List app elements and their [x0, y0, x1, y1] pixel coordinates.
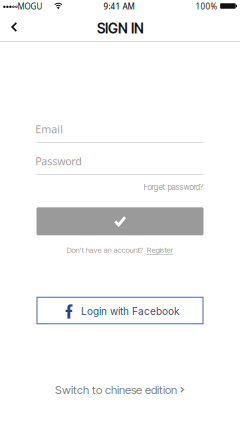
button[interactable]: [36, 207, 203, 235]
staticText: SIGN IN: [97, 20, 144, 37]
staticText: Password: [35, 154, 82, 168]
staticText: Email: [35, 122, 63, 136]
button[interactable]: Switch to chinese edition: [55, 383, 185, 397]
staticText: Switch to chinese edition: [55, 383, 177, 397]
button[interactable]: Forget password?: [143, 182, 203, 192]
staticText: Forget password?: [143, 182, 203, 192]
button[interactable]: Login with Facebook: [37, 297, 203, 324]
button[interactable]: [36, 117, 203, 143]
staticText: Don't have an account?: [66, 245, 143, 255]
staticText: 100%: [195, 1, 217, 12]
staticText: 9:41 AM: [103, 1, 134, 12]
staticText: Login with Facebook: [81, 305, 179, 317]
button[interactable]: [36, 149, 203, 175]
button[interactable]: [0, 12, 29, 42]
button[interactable]: Register: [146, 245, 173, 255]
staticText: MOGU: [17, 1, 42, 12]
staticText: Register: [146, 245, 173, 255]
